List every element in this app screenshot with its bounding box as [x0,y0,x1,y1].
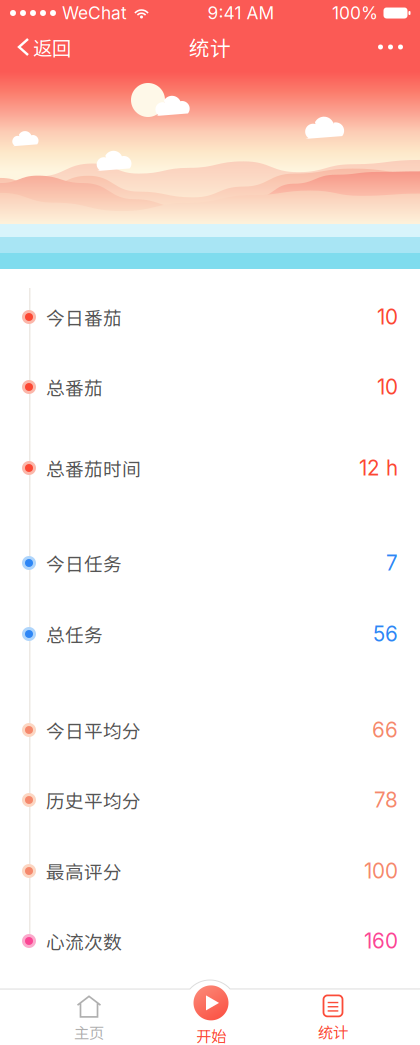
staticText: 9:41 AM [207,2,274,23]
staticText: 7 [386,550,398,575]
button[interactable]: 最高评分 [0,849,420,893]
button[interactable]: 今日任务 [0,541,420,585]
button[interactable]: 今日平均分 [0,708,420,752]
staticText: 12 h [359,455,398,480]
button[interactable]: 总番茄 [0,365,420,409]
staticText: 最高评分 [46,857,122,884]
staticText: WeChat [62,2,127,23]
staticText: 历史平均分 [46,786,141,813]
button[interactable]: More options [320,26,420,68]
staticText: 今日平均分 [46,716,141,743]
button[interactable]: 返回 [0,26,100,68]
staticText: 56 [373,621,398,646]
staticText: 统计 [189,32,231,62]
staticText: 开始 [196,1024,226,1045]
staticText: 统计 [318,1020,348,1043]
staticText: 今日任务 [46,549,122,576]
staticText: 主页 [74,1021,104,1043]
button[interactable]: 历史平均分 [0,778,420,822]
staticText: 160 [364,928,398,953]
staticText: 10 [377,374,398,399]
button[interactable]: 今日番茄 [0,295,420,339]
staticText: 78 [374,787,398,812]
staticText: 10 [377,304,398,329]
button[interactable]: 主页 [29,955,149,1045]
staticText: 总番茄时间 [46,454,141,481]
staticText: 总任务 [46,620,103,647]
button[interactable]: 开始 [151,955,271,1045]
staticText: 66 [372,717,398,742]
staticText: 100 [364,858,398,883]
button[interactable]: 心流次数 [0,919,420,963]
button[interactable]: 总番茄时间 [0,446,420,490]
staticText: 总番茄 [46,373,103,400]
staticText: 100% [332,2,378,23]
button[interactable]: 统计 [273,955,393,1045]
staticText: 返回 [33,33,71,61]
button[interactable]: 总任务 [0,612,420,656]
staticText: 心流次数 [46,927,122,954]
staticText: 今日番茄 [46,303,122,330]
